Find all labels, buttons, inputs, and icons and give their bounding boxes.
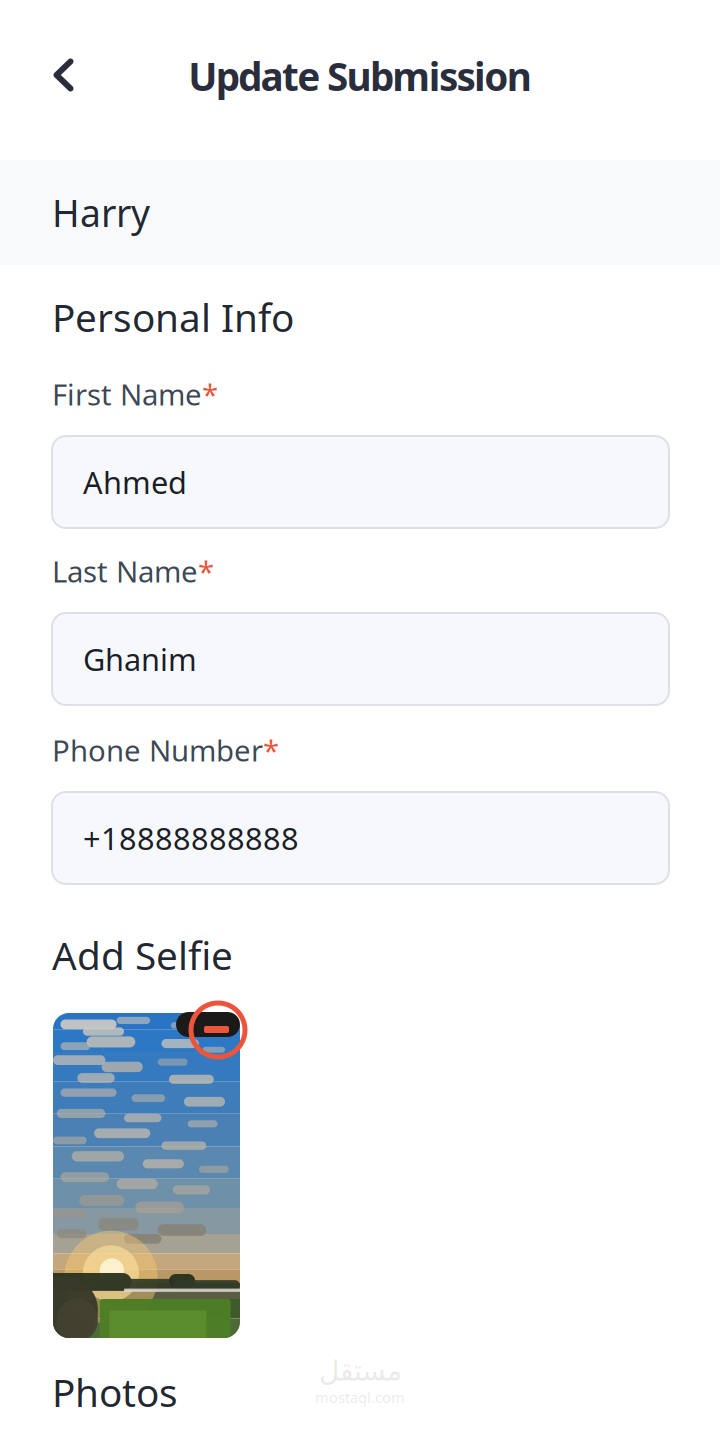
button[interactable]: Remove photo [176, 1000, 252, 1058]
button[interactable]: +18888888888 [52, 792, 669, 884]
staticText: مستقل [318, 1355, 401, 1387]
staticText: Update Submission [188, 50, 532, 102]
button[interactable]: Back [26, 37, 102, 113]
staticText: +18888888888 [83, 818, 299, 858]
staticText: * [202, 374, 218, 413]
staticText: * [198, 551, 214, 590]
staticText: Ahmed [83, 462, 187, 502]
staticText: Phone Number [52, 730, 263, 769]
staticText: First Name [52, 374, 202, 413]
staticText: Ghanim [83, 639, 197, 679]
staticText: Personal Info [52, 291, 294, 343]
button[interactable]: Ahmed [52, 436, 669, 528]
button[interactable]: Ghanim [52, 613, 669, 705]
staticText: Photos [52, 1366, 178, 1418]
staticText: Add Selfie [52, 929, 233, 981]
staticText: mostaql.com [315, 1388, 405, 1407]
staticText: * [263, 730, 279, 769]
staticText: Last Name [52, 551, 198, 590]
staticText: Harry [52, 188, 150, 237]
